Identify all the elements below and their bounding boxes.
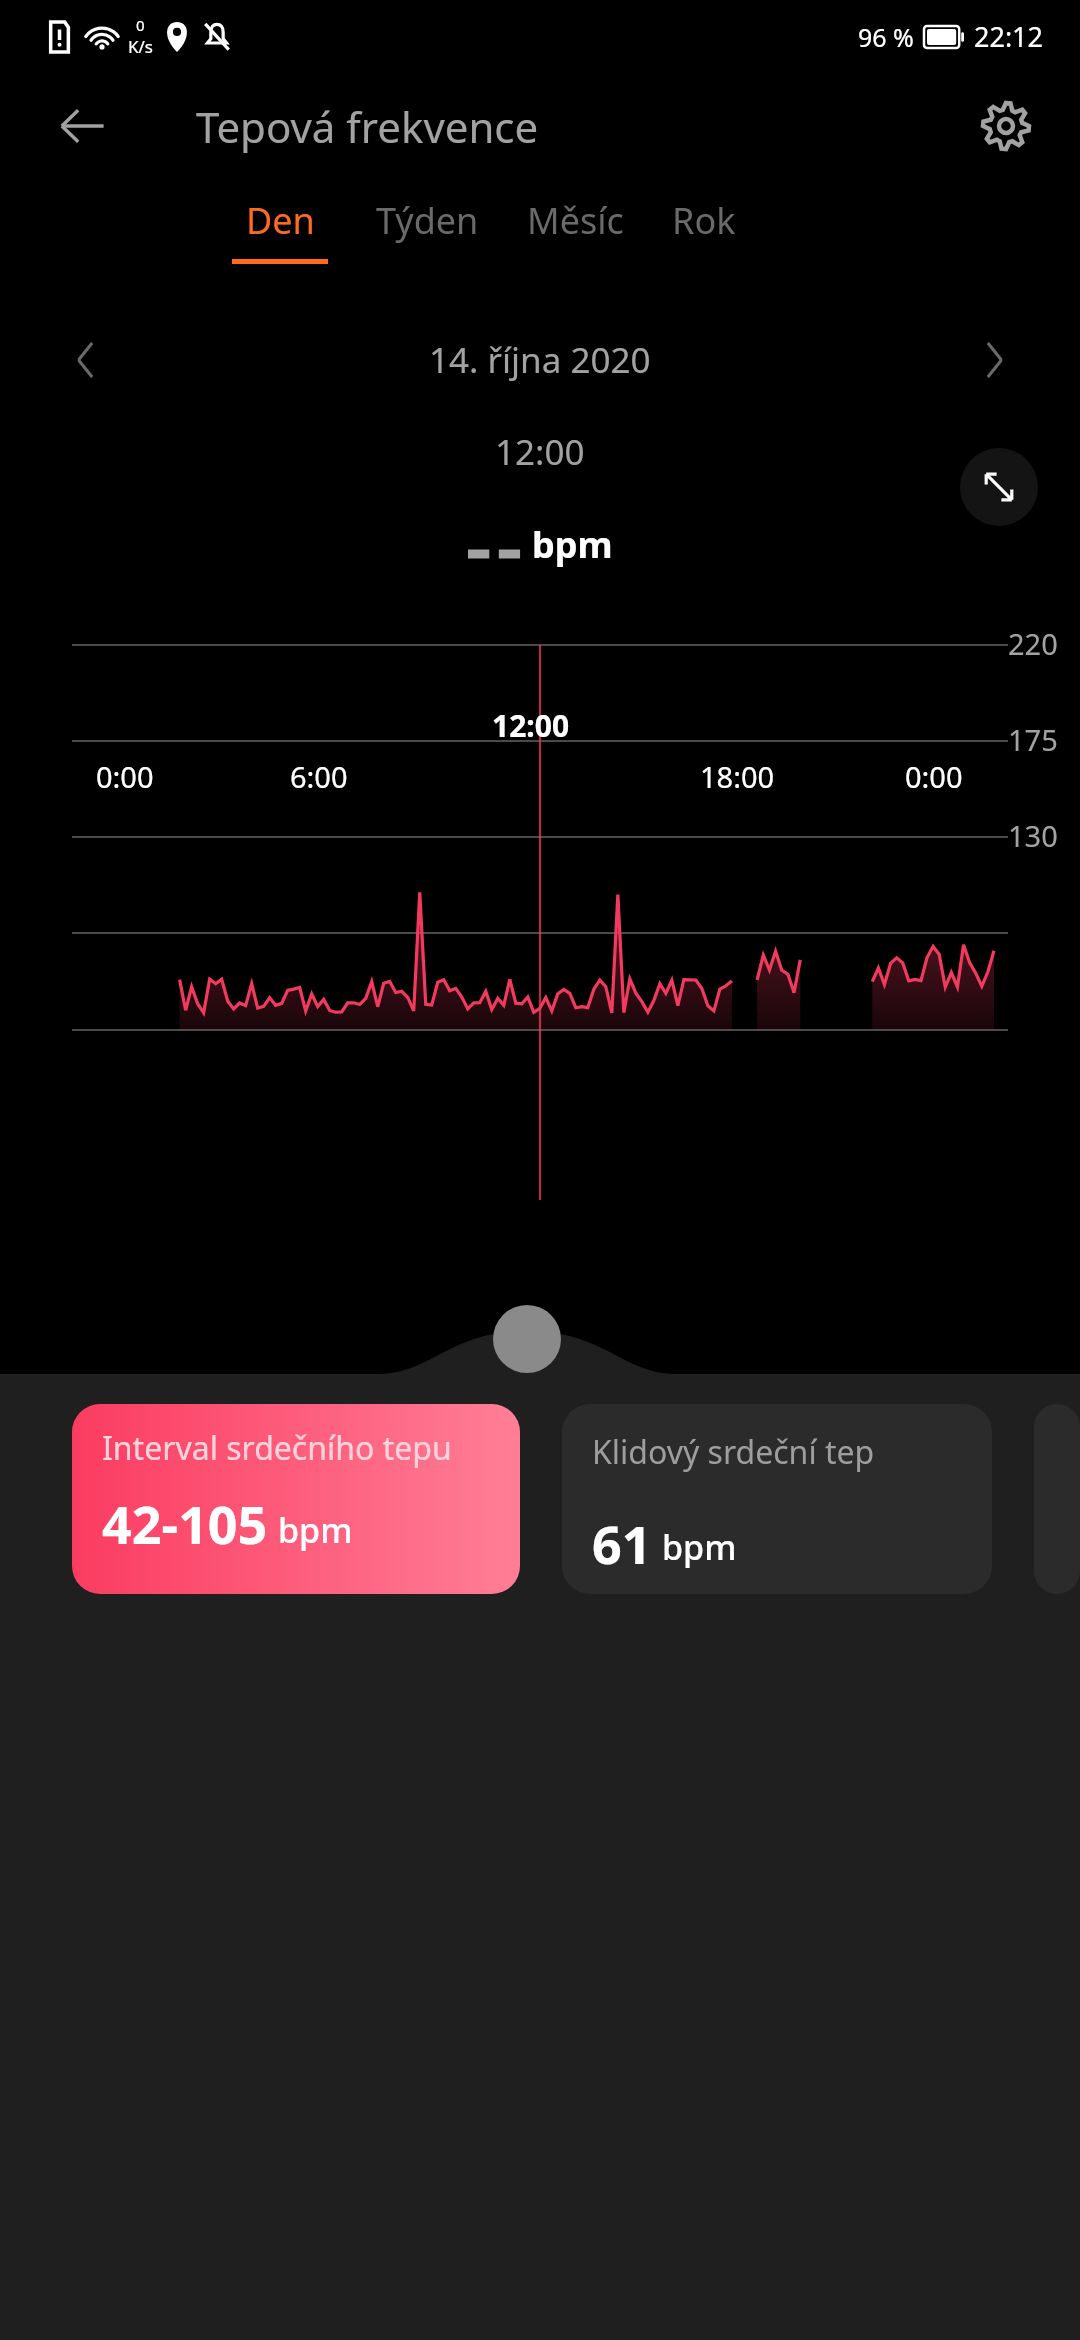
staticText: 6:00 [290, 757, 348, 796]
staticText: bpm [532, 520, 613, 569]
staticText: 220 [1008, 624, 1058, 663]
button[interactable]: Interval srdečního tepu [72, 1404, 520, 1594]
staticText: K/s [128, 35, 153, 58]
staticText: Rok [672, 196, 736, 245]
button[interactable]: Týden [376, 196, 479, 264]
staticText: Měsíc [527, 196, 624, 245]
staticText: 96 % [858, 20, 914, 54]
staticText: 175 [1008, 720, 1058, 759]
staticText: 18:00 [700, 757, 775, 796]
button[interactable]: Rok [672, 196, 736, 264]
staticText: 0 [136, 15, 145, 35]
staticText: Klidový srdeční tep [592, 1430, 875, 1474]
staticText: 0:00 [905, 757, 963, 796]
button[interactable]: Den [232, 196, 328, 264]
button[interactable]: Měsíc [527, 196, 624, 264]
staticText: 22:12 [974, 18, 1044, 55]
staticText: 14. října 2020 [429, 336, 651, 384]
staticText: 130 [1008, 816, 1058, 855]
staticText: 0:00 [96, 757, 154, 796]
button[interactable]: Expand chart [960, 448, 1038, 526]
staticText: 12:00 [492, 705, 570, 746]
staticText: Den [246, 196, 315, 245]
staticText: Týden [376, 196, 479, 245]
staticText: 12:00 [495, 428, 585, 476]
staticText: Tepová frekvence [196, 98, 539, 155]
button[interactable]: Next day [964, 330, 1024, 390]
button[interactable]: Settings [968, 88, 1044, 164]
staticText: 61 [592, 1508, 652, 1576]
staticText: 42-105 [102, 1488, 268, 1559]
button[interactable]: Klidový srdeční tep [562, 1404, 992, 1594]
staticText: bpm [278, 1507, 353, 1553]
button[interactable]: Previous day [56, 330, 116, 390]
button[interactable]: Back [50, 94, 114, 158]
staticText: bpm [662, 1524, 737, 1570]
staticText: Interval srdečního tepu [102, 1426, 452, 1470]
